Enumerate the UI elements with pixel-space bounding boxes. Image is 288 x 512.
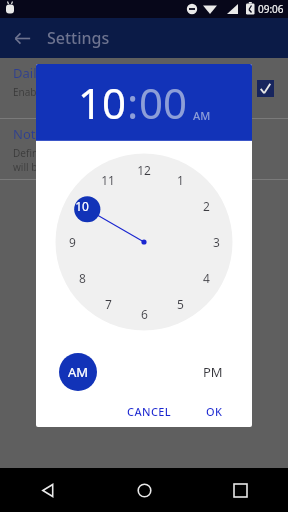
staticText: 3 <box>213 234 220 250</box>
button[interactable]: Home <box>96 468 192 512</box>
staticText: 5 <box>177 296 184 312</box>
staticText: Enable a daily notification <box>13 85 134 99</box>
staticText: CANCEL <box>127 404 172 419</box>
staticText: AM <box>68 363 89 381</box>
staticText: 7 <box>105 296 112 312</box>
button[interactable]: OK <box>199 399 230 424</box>
staticText: Define when the notification <box>13 146 147 160</box>
staticText: Daily reminder <box>13 64 104 82</box>
button[interactable]: Back <box>0 468 96 512</box>
button[interactable]: CANCEL <box>120 399 179 424</box>
button[interactable]: AM <box>59 353 97 391</box>
staticText: will be shown <box>13 160 77 174</box>
button[interactable] <box>36 141 252 348</box>
staticText: AM <box>193 108 211 123</box>
staticText: 11 <box>101 172 115 188</box>
staticText: 4 <box>203 270 210 286</box>
staticText: PM <box>203 363 223 381</box>
staticText: 1 <box>177 172 184 188</box>
staticText: : <box>127 74 139 131</box>
button[interactable]: Back <box>8 24 36 52</box>
button[interactable]: 10 <box>78 74 127 131</box>
staticText: 9 <box>69 234 76 250</box>
staticText: 09:06 <box>258 2 284 16</box>
button[interactable]: PM <box>194 353 232 391</box>
staticText: 10 <box>75 198 89 214</box>
staticText: Settings <box>47 27 110 49</box>
button[interactable]: Recent apps <box>192 468 288 512</box>
staticText: 12 <box>137 162 151 178</box>
staticText: OK <box>206 404 223 419</box>
staticText: 8 <box>79 270 86 286</box>
staticText: 6 <box>141 306 148 322</box>
staticText: Notification time <box>13 125 116 143</box>
button[interactable]: 00 <box>139 74 188 131</box>
staticText: 2 <box>203 198 210 214</box>
